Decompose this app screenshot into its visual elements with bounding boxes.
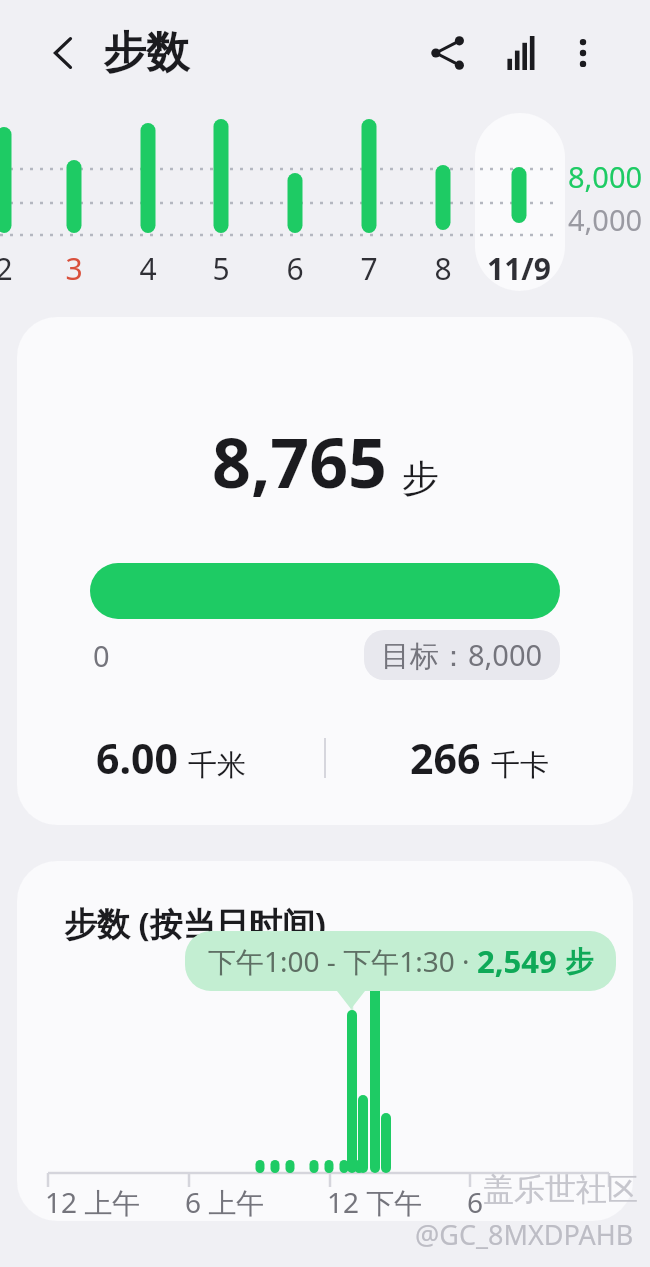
button[interactable]: More options [554,24,612,82]
staticText: 步数 [103,26,189,80]
staticText: 3 [65,248,83,289]
button[interactable]: 5 [176,245,266,291]
staticText: 6.00 [96,730,178,786]
button[interactable]: 4 [103,245,193,291]
button[interactable]: 2 [0,245,49,291]
staticText: 千米 [188,747,246,784]
staticText: 目标：8,000 [381,635,543,675]
button[interactable]: Chart view [489,23,549,83]
button[interactable]: 11/9 [474,245,564,291]
staticText: 千卡 [491,747,549,784]
staticText: 12 下午 [327,1183,423,1221]
staticText: 2 [0,248,13,289]
staticText: 5 [212,248,230,289]
button[interactable]: 7 [324,245,414,291]
staticText: 7 [360,248,378,289]
button[interactable]: 3 [29,245,119,291]
staticText: 12 上午 [45,1183,141,1221]
staticText: 266 [410,730,481,786]
staticText: 步数 (按当日时间) [64,901,326,946]
staticText: 8 [434,248,452,289]
staticText: 步 [565,944,593,979]
staticText: 步 [402,455,439,502]
button[interactable]: Back [36,25,92,81]
staticText: 4 [139,248,157,289]
staticText: 8,000 [568,157,643,196]
staticText: 8,765 [212,415,387,508]
staticText: 0 [93,636,110,675]
staticText: 11/9 [487,248,551,289]
staticText: @GC_8MXDPAHB [415,1216,634,1253]
staticText: 6 上午 [185,1183,265,1221]
staticText: 2,549 [477,940,557,982]
staticText: 4,000 [568,200,643,239]
staticText: 下午1:00 - 下午1:30 · [208,942,477,980]
staticText: 6 [286,248,304,289]
button[interactable]: 6 [250,245,340,291]
button[interactable]: 8,765 [17,317,633,825]
staticText: 6 [467,1183,484,1221]
staticText: 盖乐世社区 [483,1170,638,1209]
button[interactable]: Share [418,23,478,83]
button[interactable]: 8 [398,245,488,291]
